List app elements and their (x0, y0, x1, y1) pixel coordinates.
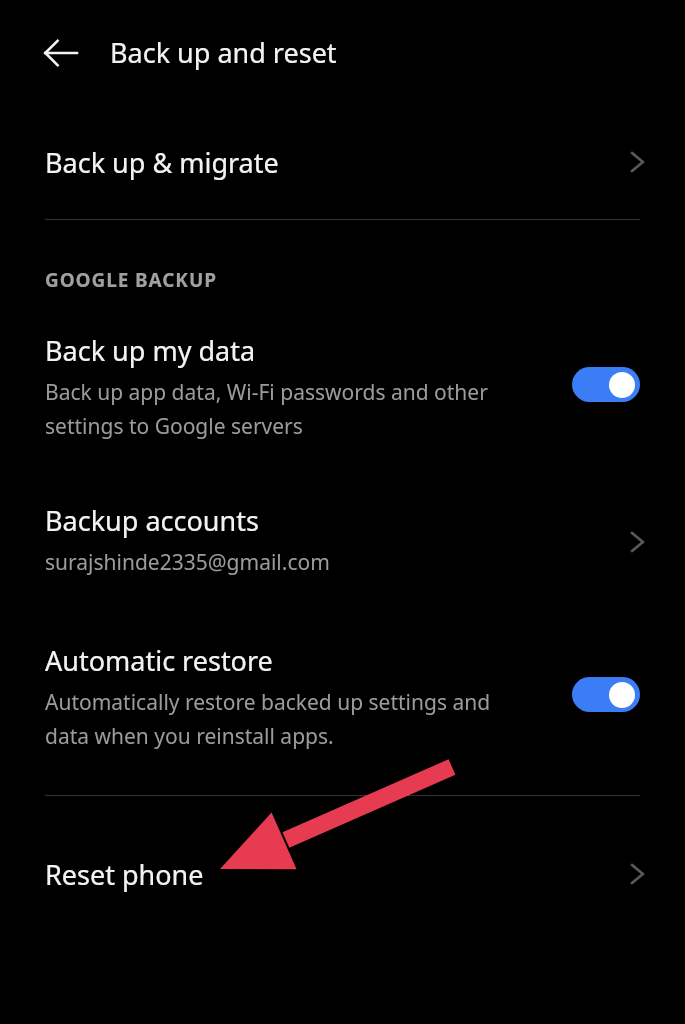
staticText: Back up app data, Wi-Fi passwords and ot… (45, 378, 488, 440)
staticText: Back up my data (45, 332, 256, 369)
staticText: surajshinde2335@gmail.com (45, 548, 330, 577)
staticText: GOOGLE BACKUP (45, 267, 217, 293)
button[interactable]: Back up my data (0, 318, 685, 458)
staticText: Reset phone (45, 856, 204, 893)
staticText: Back up and reset (110, 34, 337, 71)
staticText: Backup accounts (45, 502, 259, 539)
button[interactable]: Toggle setting (572, 677, 640, 712)
button[interactable]: Back (30, 22, 92, 84)
button[interactable]: Back up & migrate (0, 105, 685, 219)
button[interactable]: Reset phone (0, 818, 685, 930)
staticText: Back up & migrate (45, 144, 279, 181)
button[interactable]: Backup accounts (0, 488, 685, 596)
button[interactable]: Automatic restore (0, 628, 685, 768)
button[interactable]: Toggle setting (572, 367, 640, 402)
staticText: Automatically restore backed up settings… (45, 688, 491, 750)
staticText: Automatic restore (45, 642, 273, 679)
